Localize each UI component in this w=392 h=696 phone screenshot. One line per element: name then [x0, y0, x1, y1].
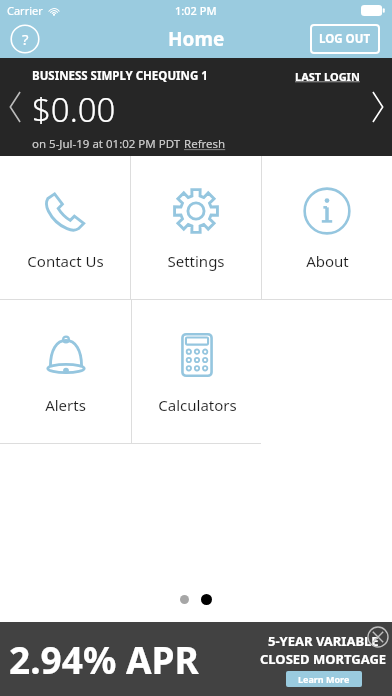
staticText: About [306, 251, 349, 271]
button[interactable]: Alerts [0, 300, 131, 443]
button[interactable]: About [262, 156, 392, 299]
button[interactable]: Refresh [184, 136, 226, 152]
button[interactable]: LAST LOGIN [295, 69, 360, 84]
staticText: LOG OUT [319, 31, 371, 47]
staticText: Carrier [7, 3, 43, 18]
button[interactable]: Next account [362, 82, 392, 132]
button[interactable]: 2.94% APR [0, 622, 392, 696]
staticText: Alerts [45, 395, 86, 415]
staticText: CLOSED MORTGAGE [260, 650, 387, 668]
staticText: BUSINESS SIMPLY CHEQUING 1 [32, 68, 208, 84]
staticText: 1:02 PM [175, 3, 217, 18]
staticText: on 5-Jul-19 at 01:02 PM PDT [32, 136, 184, 152]
button[interactable]: LOG OUT [310, 24, 380, 54]
button[interactable]: Page 2 [201, 594, 212, 605]
button[interactable]: Close ad [367, 626, 389, 648]
staticText: ? [22, 29, 29, 49]
button[interactable]: Previous account [0, 82, 30, 132]
button[interactable]: Contact Us [0, 156, 130, 299]
staticText: Settings [167, 251, 225, 271]
staticText: Calculators [158, 395, 237, 415]
staticText: Refresh [184, 136, 226, 152]
staticText: Learn More [298, 673, 350, 685]
button[interactable]: Help [10, 24, 40, 54]
staticText: Contact Us [27, 251, 104, 271]
staticText: Home [168, 26, 225, 52]
button[interactable]: Settings [131, 156, 261, 299]
button[interactable]: Learn More [286, 671, 362, 687]
staticText: LAST LOGIN [295, 69, 360, 84]
button[interactable]: Page 1 [180, 595, 189, 604]
staticText: $0.00 [32, 87, 116, 132]
button[interactable]: Calculators [132, 300, 262, 443]
staticText: 5-YEAR VARIABLE [268, 632, 379, 650]
staticText: 2.94% APR [9, 634, 199, 684]
